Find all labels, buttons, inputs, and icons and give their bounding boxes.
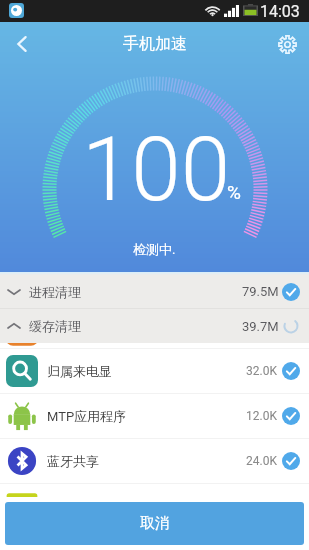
button[interactable]: 日历存储器 bbox=[0, 484, 309, 497]
button[interactable]: 进程清理 bbox=[0, 275, 309, 308]
button[interactable]: Settings bbox=[265, 22, 309, 66]
staticText: 100 bbox=[82, 117, 231, 221]
button[interactable]: MTP应用程序 bbox=[0, 394, 309, 438]
staticText: 手机加速 bbox=[123, 34, 187, 54]
staticText: % bbox=[227, 181, 241, 203]
staticText: 蓝牙共享 bbox=[47, 453, 99, 469]
button[interactable]: 缓存清理 bbox=[0, 309, 309, 343]
staticText: 归属来电显 bbox=[47, 363, 112, 379]
button[interactable]: 蓝牙共享 bbox=[0, 439, 309, 483]
staticText: 39.7M bbox=[242, 319, 279, 334]
staticText: 79.5M bbox=[242, 284, 279, 299]
staticText: 12.0K bbox=[246, 409, 277, 423]
staticText: 检测中. bbox=[133, 241, 176, 257]
staticText: 取消 bbox=[140, 514, 170, 533]
staticText: 14:03 bbox=[260, 2, 300, 21]
button[interactable]: Back bbox=[0, 22, 44, 66]
button[interactable]: 来电归属地 bbox=[0, 343, 309, 348]
staticText: 进程清理 bbox=[29, 284, 81, 300]
button[interactable]: 归属来电显 bbox=[0, 349, 309, 393]
staticText: MTP应用程序 bbox=[47, 408, 127, 424]
button[interactable]: 取消 bbox=[5, 502, 304, 545]
staticText: 24.0K bbox=[246, 454, 277, 468]
staticText: 缓存清理 bbox=[29, 318, 81, 334]
staticText: 32.0K bbox=[246, 364, 277, 378]
